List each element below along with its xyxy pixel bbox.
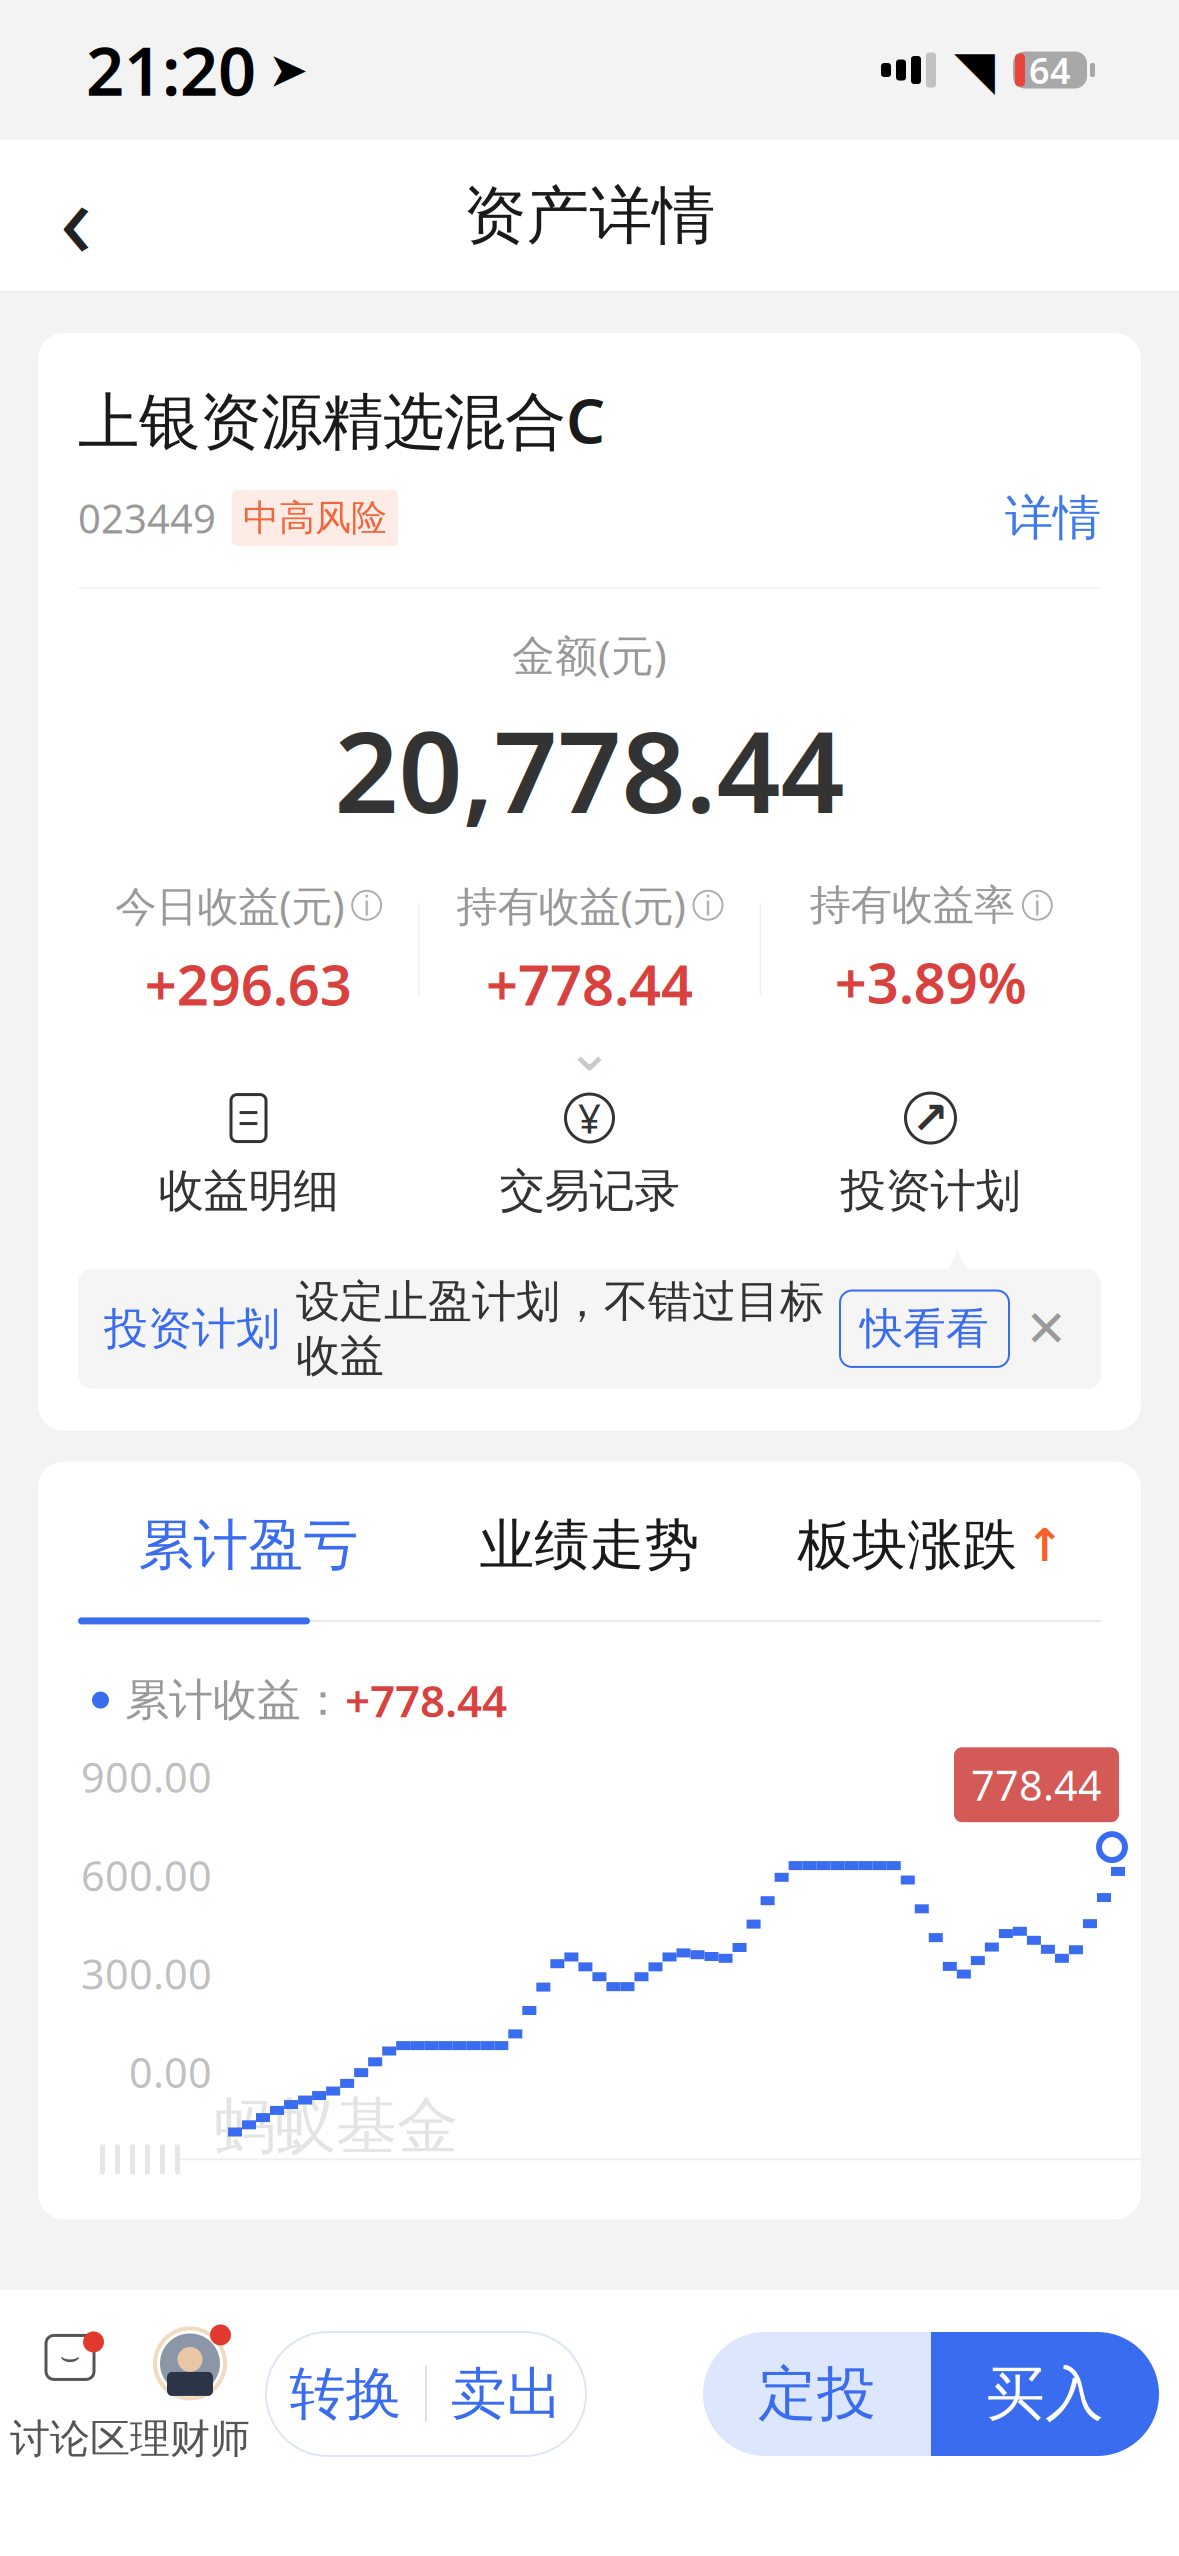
staticText: 金额(元) [512, 626, 667, 683]
button[interactable]: 关闭 [1017, 1300, 1075, 1358]
button[interactable]: 快看看 [840, 1290, 1009, 1367]
staticText: 讨论区 [10, 2414, 130, 2463]
button[interactable]: 累计盈亏 [78, 1504, 419, 1587]
staticText: ↑ [1025, 1520, 1063, 1571]
staticText: 21:20 [86, 26, 256, 114]
staticText: i [704, 887, 711, 923]
button[interactable]: 板块涨跌 [760, 1504, 1101, 1587]
staticText: 业绩走势 [479, 1512, 699, 1579]
button[interactable]: 买入 [931, 2332, 1159, 2456]
staticText: 交易记录 [499, 1163, 679, 1219]
staticText: +778.44 [486, 947, 693, 1021]
staticText: 资产详情 [463, 177, 715, 254]
staticText: 投资计划 [104, 1302, 280, 1356]
staticText: +296.63 [145, 947, 352, 1021]
staticText: ↗ [912, 1093, 949, 1143]
staticText: ‹ [59, 145, 92, 287]
staticText: 定投 [758, 2358, 876, 2430]
staticText: 64 [1029, 46, 1071, 94]
staticText: 快看看 [860, 1302, 989, 1355]
staticText: 设定止盈计划，不错过目标收益 [296, 1275, 824, 1383]
staticText: 板块涨跌 [797, 1512, 1017, 1579]
staticText: 持有收益(元) [456, 878, 685, 933]
staticText: 卖出 [450, 2360, 562, 2428]
staticText: 900.00 [81, 1749, 212, 1804]
staticText: 买入 [986, 2358, 1104, 2430]
staticText: 300.00 [81, 1946, 212, 2001]
staticText: 投资计划 [840, 1163, 1020, 1219]
button[interactable]: 理财师 [130, 2324, 250, 2463]
staticText: 蚂蚁基金 [214, 2089, 458, 2164]
button[interactable]: ¥ [419, 1083, 760, 1227]
staticText: 023449 [78, 491, 216, 544]
staticText: ¥ [578, 1091, 601, 1145]
staticText: ✕ [1025, 1300, 1067, 1357]
staticText: ◥ [954, 40, 995, 100]
staticText: ⌣ [59, 2342, 80, 2373]
staticText: 上银资源精选混合C [78, 379, 605, 460]
button[interactable]: ⌣ [10, 2324, 130, 2463]
staticText: ▲ [944, 1241, 971, 1280]
staticText: 20,778.44 [334, 695, 844, 844]
button[interactable]: 返回 [20, 160, 132, 272]
button[interactable]: 详情 [985, 482, 1101, 553]
staticText: 理财师 [130, 2414, 250, 2463]
staticText: ⌄ [566, 1019, 613, 1083]
staticText: 详情 [1005, 488, 1101, 547]
staticText: i [363, 887, 370, 923]
staticText: 转换 [289, 2360, 401, 2428]
staticText: 收益明细 [158, 1163, 338, 1219]
staticText: 600.00 [81, 1848, 212, 1903]
staticText: 持有收益率 [810, 880, 1015, 931]
staticText: 累计收益： [125, 1673, 345, 1727]
staticText: +3.89% [835, 945, 1027, 1019]
button[interactable]: 业绩走势 [419, 1504, 760, 1587]
staticText: 累计盈亏 [138, 1512, 358, 1579]
staticText: i [1034, 887, 1041, 923]
button[interactable]: ↗ [760, 1083, 1101, 1227]
staticText: 778.44 [971, 1757, 1102, 1812]
staticText: ➤ [268, 43, 308, 97]
button[interactable]: 定投 [703, 2332, 931, 2456]
staticText: 今日收益(元) [115, 878, 344, 933]
staticText: +778.44 [345, 1671, 507, 1729]
button[interactable]: 收益明细 [78, 1083, 419, 1227]
button[interactable]: 转换 [266, 2332, 586, 2456]
staticText: 0.00 [129, 2044, 212, 2099]
staticText: 中高风险 [243, 496, 387, 540]
